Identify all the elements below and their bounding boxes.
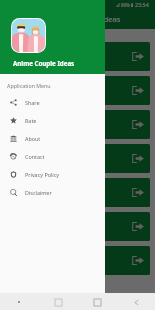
button[interactable]: Anime Couple Ideas 2: [5, 76, 150, 105]
button[interactable]: Anime Couple Ideas 1: [5, 42, 150, 71]
button[interactable]: Anime Couple Ideas 6: [5, 212, 150, 241]
button[interactable]: Privacy Policy: [0, 165, 105, 183]
staticText: Anime Couple Ideas 1: [13, 51, 132, 62]
staticText: Disclaimer: [25, 189, 52, 196]
staticText: Rate: [25, 117, 37, 124]
button[interactable]: Rate: [0, 111, 105, 129]
staticText: Anime Couple Ideas 3: [13, 119, 132, 130]
staticText: Contact: [25, 153, 45, 160]
button[interactable]: Recents: [50, 294, 66, 310]
button[interactable]: Share: [0, 93, 105, 111]
staticText: Privacy Policy: [25, 171, 60, 178]
staticText: Anime Couple Ideas 7: [13, 255, 132, 266]
button[interactable]: Anime Couple Ideas 5: [5, 178, 150, 207]
staticText: Application Menu: [7, 82, 51, 89]
staticText: About: [25, 135, 41, 142]
staticText: Anime Couple Ideas 5: [13, 187, 132, 198]
button[interactable]: Anime Couple Ideas 7: [5, 246, 150, 275]
button[interactable]: Home: [89, 294, 105, 310]
button[interactable]: About: [0, 129, 105, 147]
staticText: Share: [25, 99, 40, 106]
button[interactable]: Disclaimer: [0, 183, 105, 201]
staticText: Anime Couple Ideas: [49, 14, 121, 24]
staticText: Anime Couple Ideas 2: [13, 85, 132, 96]
button[interactable]: Anime Couple Ideas 3: [5, 110, 150, 139]
staticText: 23:54: [135, 1, 149, 8]
staticText: 69%: [121, 2, 130, 8]
staticText: Anime Couple Ideas: [13, 59, 75, 67]
button[interactable]: Back: [128, 294, 144, 310]
staticText: Anime Couple Ideas 4: [13, 153, 132, 164]
staticText: Anime Couple Ideas 6: [13, 221, 132, 232]
button[interactable]: Anime Couple Ideas 4: [5, 144, 150, 173]
button[interactable]: Contact: [0, 147, 105, 165]
button[interactable]: Menu: [11, 294, 27, 310]
